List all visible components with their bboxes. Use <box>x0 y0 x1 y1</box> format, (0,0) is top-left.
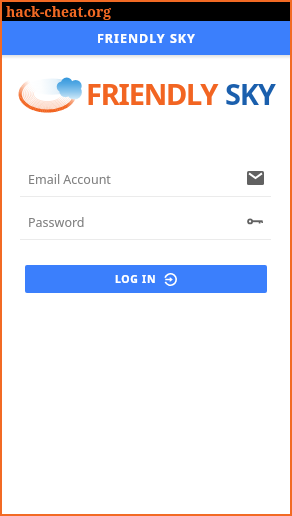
staticText: FRIENDLY SKY <box>97 30 196 47</box>
other: Email <box>247 171 264 185</box>
staticText: hack-cheat.org <box>6 2 112 21</box>
other: Password <box>247 214 264 228</box>
staticText: FRIENDLY <box>86 74 218 113</box>
staticText: LOG IN <box>115 272 157 286</box>
staticText: Email Account <box>28 171 247 188</box>
staticText: Password <box>28 214 247 231</box>
staticText: SKY <box>225 74 275 113</box>
button[interactable]: Password <box>20 211 271 240</box>
button[interactable]: LOG IN <box>25 265 267 293</box>
button[interactable]: Email Account <box>20 168 271 197</box>
